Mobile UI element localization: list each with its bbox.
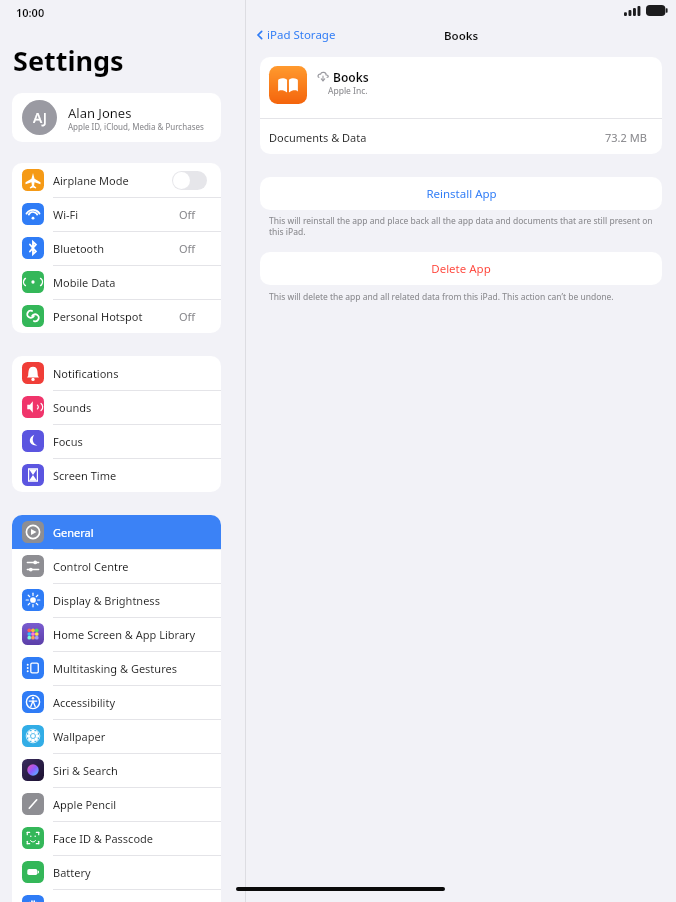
button[interactable]: Reinstall App — [260, 177, 662, 210]
button[interactable]: Apple Pencil — [12, 787, 221, 821]
button[interactable]: General — [12, 515, 221, 549]
staticText: Books — [333, 69, 369, 85]
staticText: Siri & Search — [53, 763, 118, 778]
staticText: Apple Pencil — [53, 797, 117, 812]
staticText: Screen Time — [53, 468, 117, 483]
staticText: Settings — [13, 42, 124, 79]
staticText: Display & Brightness — [53, 593, 160, 608]
staticText: 10:00 — [16, 5, 45, 20]
staticText: Documents & Data — [269, 130, 367, 145]
staticText: Face ID & Passcode — [53, 831, 154, 846]
staticText: Notifications — [53, 366, 119, 381]
staticText: Reinstall App — [426, 186, 497, 202]
button[interactable]: Bluetooth — [12, 231, 221, 265]
staticText: This will reinstall the app and place ba… — [269, 215, 659, 237]
button[interactable]: Wi-Fi — [12, 197, 221, 231]
staticText: 73.2 MB — [605, 130, 647, 145]
button[interactable]: Airplane Mode — [12, 163, 221, 197]
button[interactable]: Control Centre — [12, 549, 221, 583]
button[interactable]: Wallpaper — [12, 719, 221, 753]
button[interactable]: Face ID & Passcode — [12, 821, 221, 855]
button[interactable]: AJ — [12, 93, 221, 142]
button[interactable]: Documents & Data — [260, 119, 662, 154]
button[interactable]: Home Screen & App Library — [12, 617, 221, 651]
button[interactable]: Multitasking & Gestures — [12, 651, 221, 685]
staticText: Apple Inc. — [328, 85, 368, 97]
button[interactable]: Personal Hotspot — [12, 299, 221, 333]
button[interactable]: Siri & Search — [12, 753, 221, 787]
staticText: Off — [179, 207, 196, 222]
button[interactable]: Privacy & Security — [12, 889, 221, 902]
staticText: Books — [444, 28, 479, 44]
staticText: Control Centre — [53, 559, 129, 574]
staticText: Alan Jones — [68, 104, 132, 122]
button[interactable]: Focus — [12, 424, 221, 458]
button[interactable]: Battery — [12, 855, 221, 889]
staticText: Mobile Data — [53, 275, 116, 290]
staticText: Off — [179, 241, 196, 256]
staticText: Sounds — [53, 400, 92, 415]
staticText: Apple ID, iCloud, Media & Purchases — [68, 121, 204, 132]
button[interactable]: Delete App — [260, 252, 662, 285]
button[interactable]: Accessibility — [12, 685, 221, 719]
staticText: Focus — [53, 434, 83, 449]
button[interactable]: Airplane Mode toggle — [172, 171, 207, 190]
staticText: Battery — [53, 865, 91, 880]
button[interactable]: Screen Time — [12, 458, 221, 492]
staticText: iPad Storage — [267, 27, 336, 43]
button[interactable]: Sounds — [12, 390, 221, 424]
staticText: Wi-Fi — [53, 207, 79, 222]
staticText: Personal Hotspot — [53, 309, 143, 324]
staticText: Off — [179, 309, 196, 324]
staticText: Home Screen & App Library — [53, 627, 196, 642]
button[interactable]: iPad Storage — [253, 24, 336, 46]
staticText: This will delete the app and all related… — [269, 291, 659, 303]
staticText: AJ — [33, 108, 47, 127]
staticText: Multitasking & Gestures — [53, 661, 177, 676]
staticText: General — [53, 525, 94, 540]
staticText: Wallpaper — [53, 729, 106, 744]
staticText: Bluetooth — [53, 241, 105, 256]
button[interactable]: Notifications — [12, 356, 221, 390]
staticText: Accessibility — [53, 695, 116, 710]
button[interactable]: Display & Brightness — [12, 583, 221, 617]
button[interactable]: Mobile Data — [12, 265, 221, 299]
staticText: Delete App — [431, 261, 491, 277]
staticText: Airplane Mode — [53, 173, 129, 188]
